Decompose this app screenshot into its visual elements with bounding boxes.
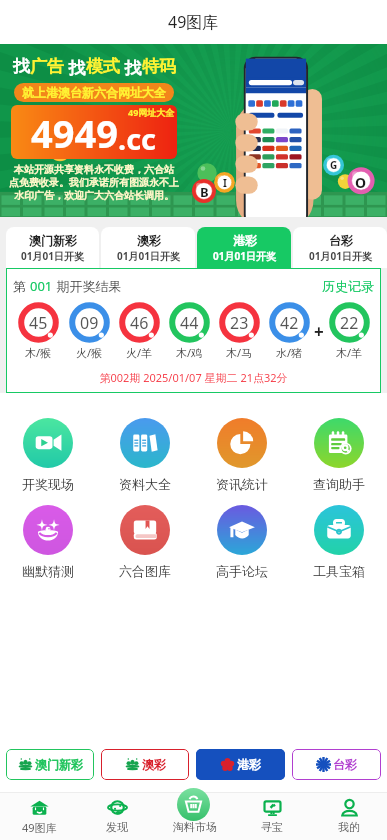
button[interactable]: 台彩: [293, 227, 387, 268]
button[interactable]: 查询助手: [290, 418, 387, 492]
staticText: 港彩: [233, 233, 257, 248]
staticText: 49图库: [168, 11, 219, 33]
staticText: 01月01日开奖: [21, 249, 84, 263]
staticText: 01月01日开奖: [309, 249, 372, 263]
staticText: 49网址大全: [128, 106, 175, 118]
button[interactable]: 49图库: [0, 792, 78, 840]
staticText: 木/羊: [336, 345, 363, 360]
staticText: .cc: [118, 119, 157, 158]
staticText: 找: [64, 56, 86, 79]
button[interactable]: 澳彩: [101, 227, 195, 268]
button[interactable]: 发现: [78, 792, 156, 840]
staticText: 港彩: [237, 757, 261, 772]
staticText: 广告: [30, 56, 64, 77]
staticText: 淘料市场: [173, 820, 217, 834]
staticText: 历史记录: [322, 278, 374, 294]
staticText: 42: [280, 312, 299, 334]
staticText: 期开奖结果: [53, 277, 122, 295]
button[interactable]: 幽默猜测: [0, 505, 96, 579]
staticText: 01月01日开奖: [213, 249, 276, 263]
staticText: 高手论坛: [216, 563, 268, 579]
staticText: 工具宝箱: [313, 563, 365, 579]
button[interactable]: 资讯统计: [193, 418, 290, 492]
staticText: 001: [30, 277, 53, 295]
staticText: 我的: [338, 820, 360, 834]
staticText: 火/羊: [126, 345, 153, 360]
staticText: O: [355, 173, 367, 189]
staticText: 澳彩: [137, 233, 161, 248]
button[interactable]: 寻宝: [233, 792, 310, 840]
button[interactable]: 澳门新彩: [6, 749, 94, 780]
button[interactable]: 六合图库: [96, 505, 193, 579]
staticText: 本站开源共享资料永不收费，六合站: [14, 163, 174, 176]
staticText: 就上港澳台新六合网址大全: [22, 85, 166, 100]
staticText: 49图库: [22, 820, 57, 835]
staticText: 第: [13, 277, 30, 295]
staticText: 22: [340, 312, 359, 334]
staticText: 09: [80, 312, 99, 334]
staticText: 找: [120, 56, 142, 79]
button[interactable]: 澳彩: [101, 749, 189, 780]
staticText: 44: [180, 312, 199, 334]
staticText: 幽默猜测: [22, 563, 74, 579]
staticText: 木/猴: [25, 345, 52, 360]
button[interactable]: 资料大全: [96, 418, 193, 492]
button[interactable]: 开奖现场: [0, 418, 96, 492]
staticText: 46: [130, 312, 149, 334]
staticText: 木/马: [226, 345, 253, 360]
staticText: 开奖现场: [22, 476, 74, 492]
button[interactable]: 淘料市场: [156, 792, 233, 840]
staticText: 45: [29, 312, 48, 334]
staticText: I: [223, 176, 227, 187]
button[interactable]: 澳门新彩: [6, 227, 99, 268]
button[interactable]: 台彩: [292, 749, 381, 780]
staticText: 23: [230, 312, 249, 334]
staticText: 火/猴: [76, 345, 103, 360]
staticText: 特码: [142, 56, 176, 77]
staticText: 找: [13, 56, 30, 77]
staticText: G: [330, 158, 338, 169]
staticText: 水印广告，欢迎广大六合站长调用。: [14, 189, 174, 202]
staticText: 六合图库: [119, 563, 171, 579]
staticText: 澳门新彩: [29, 233, 77, 248]
button[interactable]: 工具宝箱: [290, 505, 387, 579]
button[interactable]: 港彩: [196, 749, 285, 780]
button[interactable]: 历史记录: [322, 278, 374, 294]
staticText: 资料大全: [119, 476, 171, 492]
button[interactable]: 淘料市场: [177, 788, 210, 821]
button[interactable]: 高手论坛: [193, 505, 290, 579]
staticText: 澳彩: [142, 757, 166, 772]
staticText: 水/猪: [276, 345, 303, 360]
staticText: 寻宝: [261, 820, 283, 834]
staticText: 木/鸡: [176, 345, 203, 360]
staticText: 4949: [31, 107, 118, 159]
staticText: +: [314, 320, 324, 343]
staticText: 资讯统计: [216, 476, 268, 492]
staticText: 澳门新彩: [35, 757, 83, 772]
staticText: B: [200, 183, 209, 199]
staticText: 01月01日开奖: [117, 249, 180, 263]
staticText: 第002期 2025/01/07 星期二 21点32分: [13, 370, 374, 385]
button[interactable]: 我的: [310, 792, 387, 840]
staticText: 查询助手: [313, 476, 365, 492]
button[interactable]: 港彩: [197, 227, 291, 268]
staticText: 台彩: [333, 757, 357, 772]
staticText: 发现: [106, 820, 128, 834]
staticText: 台彩: [329, 233, 353, 248]
staticText: 点免费收录。我们承诺所有图源永不上: [9, 176, 179, 189]
staticText: 模式: [86, 56, 120, 77]
